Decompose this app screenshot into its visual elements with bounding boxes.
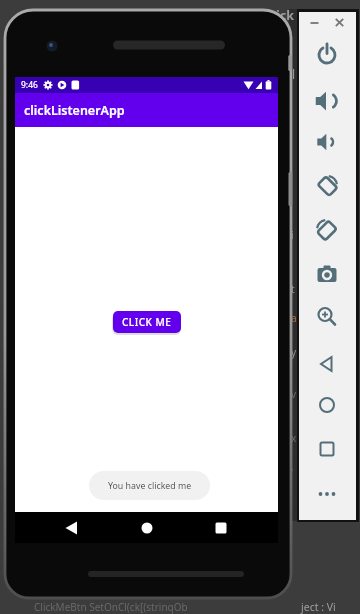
staticText: clickListenerApp: [24, 102, 125, 119]
staticText: ClickMeBtn SetOnCl(ck[(strinqOb: [34, 600, 188, 614]
button[interactable]: [313, 303, 341, 331]
staticText: l: [292, 66, 296, 82]
button[interactable]: CLICK ME: [113, 311, 181, 333]
staticText: CLICK ME: [122, 315, 172, 329]
staticText: t: [291, 282, 295, 296]
button[interactable]: [313, 260, 341, 288]
button[interactable]: [313, 40, 341, 68]
staticText: v: [291, 387, 297, 401]
staticText: You have clicked me: [108, 480, 192, 492]
button[interactable]: [207, 514, 235, 542]
button[interactable]: [313, 171, 341, 199]
button[interactable]: [133, 514, 161, 542]
staticText: i: [291, 228, 294, 242]
staticText: ,: [291, 460, 294, 474]
staticText: 9:46: [21, 79, 38, 91]
staticText: ject : Vi: [301, 600, 336, 614]
button[interactable]: [313, 350, 341, 378]
staticText: x: [291, 431, 297, 445]
button[interactable]: [308, 16, 321, 29]
button[interactable]: [313, 391, 341, 419]
button[interactable]: [57, 514, 85, 542]
button[interactable]: [313, 435, 341, 463]
staticText: a: [291, 311, 297, 325]
button[interactable]: [333, 16, 346, 29]
button[interactable]: [313, 128, 341, 156]
staticText: y: [291, 345, 297, 359]
button[interactable]: [313, 480, 341, 508]
button[interactable]: [313, 215, 341, 243]
staticText: ick: [276, 7, 294, 24]
button[interactable]: [313, 87, 341, 115]
